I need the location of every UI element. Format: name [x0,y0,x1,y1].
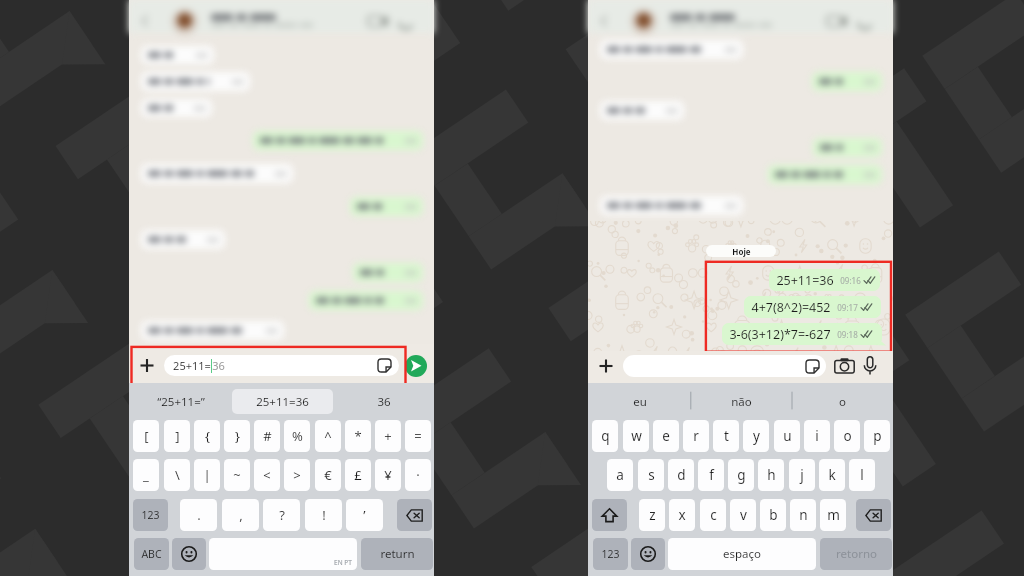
button[interactable]: ’ [346,499,383,531]
button[interactable]: Shift [592,499,627,531]
button[interactable]: n [790,499,816,531]
button[interactable]: ? [263,499,300,531]
button[interactable]: 25+11= [164,355,399,376]
button[interactable]: b [760,499,786,531]
button[interactable]: | [194,459,220,491]
button[interactable]: 25+11=36 [232,389,333,414]
button[interactable]: c [700,499,726,531]
button[interactable]: v [730,499,756,531]
button[interactable]: . [180,499,217,531]
button[interactable]: { [194,420,220,452]
button[interactable]: z [639,499,665,531]
button[interactable]: não [691,389,792,414]
button[interactable]: x [669,499,695,531]
staticText: 4+7(8^2)=452 [751,299,831,316]
button[interactable]: * [345,420,371,452]
button[interactable]: retorno [820,538,892,570]
button[interactable]: p [864,420,890,452]
staticText: | [203,466,211,484]
staticText: 36 [212,358,225,373]
button[interactable]: _ [133,459,159,491]
button[interactable]: t [713,420,739,452]
button[interactable]: q [592,420,618,452]
button[interactable]: m [820,499,846,531]
button[interactable]: € [315,459,341,491]
button[interactable]: Send [405,355,427,377]
button[interactable]: “25+11=” [129,389,232,414]
staticText: } [235,427,240,445]
button[interactable]: a [607,459,633,491]
button[interactable]: < [254,459,280,491]
button[interactable] [623,355,826,377]
button[interactable]: % [284,420,310,452]
button[interactable]: = [405,420,431,452]
button[interactable]: Voice message [863,356,877,376]
button[interactable]: h [758,459,784,491]
staticText: 25+11= [173,358,211,373]
button[interactable]: s [638,459,664,491]
button[interactable]: f [698,459,724,491]
button[interactable]: Camera [834,357,855,374]
button[interactable]: # [254,420,280,452]
button[interactable]: y [743,420,769,452]
button[interactable]: ^ [315,420,341,452]
button[interactable]: i [804,420,830,452]
button[interactable]: ABC [134,538,169,570]
button[interactable]: o [834,420,860,452]
button[interactable]: > [284,459,310,491]
button[interactable] [129,0,434,33]
staticText: % [292,427,303,445]
staticText: 09:17 [837,302,858,313]
button[interactable]: ~ [224,459,250,491]
button[interactable]: } [224,420,250,452]
button[interactable]: · [405,459,431,491]
button[interactable]: 36 [333,389,434,414]
button[interactable]: k [819,459,845,491]
button[interactable]: return [361,538,433,570]
button[interactable]: r [683,420,709,452]
button[interactable]: w [623,420,649,452]
button[interactable]: Backspace [856,499,891,531]
staticText: ¥ [384,466,392,484]
button[interactable]: £ [345,459,371,491]
button[interactable] [588,0,893,33]
staticText: EN PT [334,558,352,567]
button[interactable]: + [375,420,401,452]
button[interactable]: j [789,459,815,491]
button[interactable]: l [849,459,875,491]
staticText: ABC [141,547,162,561]
button[interactable]: [ [133,420,159,452]
button[interactable]: u [774,420,800,452]
button[interactable]: Emoji [631,538,665,570]
button[interactable]: Hoje [706,245,776,257]
button[interactable]: e [653,420,679,452]
staticText: q [601,427,610,445]
button[interactable]: espaço [668,538,816,570]
button[interactable]: \ [164,459,190,491]
button[interactable]: 25+11=36 [769,269,880,291]
button[interactable]: 3-6(3+12)*7=-627 [722,323,882,345]
staticText: , [239,506,243,524]
button[interactable]: ¥ [375,459,401,491]
button[interactable]: d [668,459,694,491]
button[interactable]: EN PT [209,538,357,570]
staticText: f [709,466,714,484]
staticText: b [769,506,778,524]
button[interactable]: 4+7(8^2)=452 [744,296,881,318]
button[interactable]: g [728,459,754,491]
button[interactable]: , [222,499,259,531]
button[interactable]: Backspace [397,499,432,531]
button[interactable]: ] [164,420,190,452]
staticText: u [783,427,792,445]
button[interactable]: ! [305,499,342,531]
button[interactable]: 123 [593,538,628,570]
button[interactable]: eu [588,389,691,414]
staticText: ~ [233,466,241,484]
button[interactable]: o [792,389,893,414]
staticText: = [414,427,422,445]
staticText: Hoje [732,246,751,257]
staticText: p [873,427,882,445]
button[interactable]: 123 [133,499,168,531]
staticText: \ [175,466,180,484]
button[interactable]: Emoji [172,538,206,570]
